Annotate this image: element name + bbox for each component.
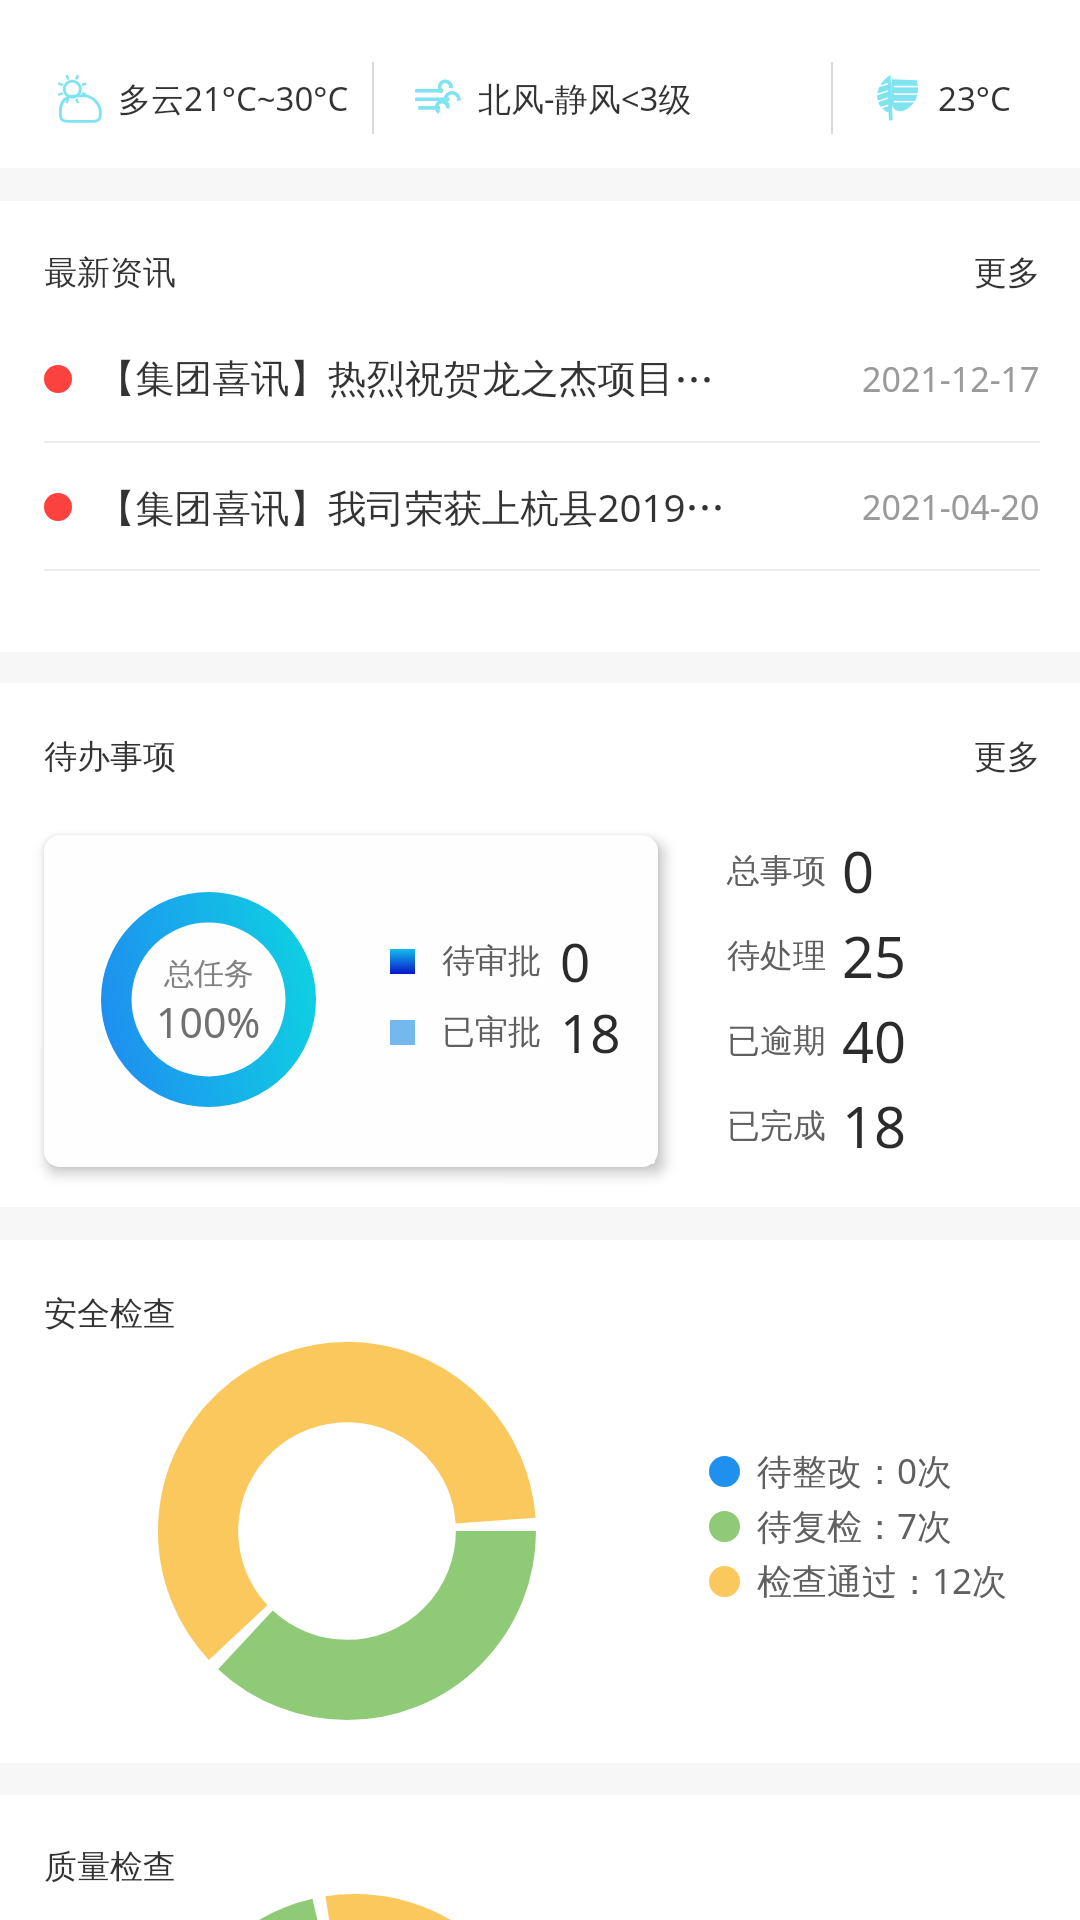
staticText: 更多	[974, 736, 1040, 778]
staticText: 已完成	[727, 1105, 826, 1147]
staticText: 2021-04-20	[862, 484, 1040, 530]
staticText: 0	[560, 925, 591, 997]
staticText: 待办事项	[44, 736, 176, 778]
staticText: 更多	[974, 252, 1040, 294]
other: Weather	[52, 72, 104, 124]
button[interactable]: 更多	[944, 720, 1080, 794]
staticText: 待审批	[442, 940, 541, 982]
staticText: 待复检：7次	[757, 1502, 953, 1550]
other: Wind	[412, 72, 464, 124]
staticText: 总事项	[727, 850, 826, 892]
staticText: 检查通过：12次	[757, 1557, 1008, 1605]
staticText: 质量检查	[44, 1846, 176, 1888]
button[interactable]: 待审批	[390, 925, 591, 997]
button[interactable]: 总任务	[44, 835, 658, 1167]
staticText: 多云21°C~30°C	[118, 76, 349, 121]
button[interactable]: 待整改：0次	[709, 1447, 953, 1495]
staticText: 100%	[156, 994, 261, 1050]
staticText: 40	[842, 1003, 907, 1079]
staticText: 总任务	[164, 955, 254, 993]
staticText: 安全检查	[44, 1293, 176, 1335]
button[interactable]: 总事项	[727, 833, 875, 909]
other: Air quality	[872, 72, 924, 124]
other: Quality inspection chart	[166, 1894, 544, 1920]
staticText: 18	[560, 996, 621, 1068]
button[interactable]: 【集团喜讯】我司荣获上杭县2019	[0, 443, 1080, 571]
button[interactable]: 更多	[944, 236, 1080, 310]
staticText: 待整改：0次	[757, 1447, 953, 1495]
button[interactable]: 已审批	[390, 996, 621, 1068]
button[interactable]: 已完成	[727, 1088, 907, 1164]
button[interactable]: 检查通过：12次	[709, 1557, 1008, 1605]
staticText: 【集团喜讯】热烈祝贺龙之杰项目	[97, 355, 675, 404]
button[interactable]: 已逾期	[727, 1003, 907, 1079]
staticText: 23°C	[938, 76, 1011, 121]
other: Safety inspection chart	[158, 1342, 536, 1720]
staticText: 待处理	[727, 935, 826, 977]
staticText: 最新资讯	[44, 252, 176, 294]
button[interactable]: 【集团喜讯】热烈祝贺龙之杰项目	[0, 315, 1080, 443]
staticText: 25	[842, 918, 907, 994]
staticText: 2021-12-17	[862, 356, 1040, 402]
staticText: 北风-静风<3级	[478, 76, 692, 121]
button[interactable]: Weather	[52, 64, 352, 132]
staticText: 已审批	[442, 1011, 541, 1053]
button[interactable]: 待处理	[727, 918, 907, 994]
staticText: 0	[842, 833, 875, 909]
button[interactable]: 待复检：7次	[709, 1502, 953, 1550]
staticText: 已逾期	[727, 1020, 826, 1062]
staticText: 【集团喜讯】我司荣获上杭县2019	[97, 481, 686, 534]
button[interactable]: Wind	[412, 64, 702, 132]
staticText: 18	[842, 1088, 907, 1164]
button[interactable]: Air quality	[872, 64, 1022, 132]
